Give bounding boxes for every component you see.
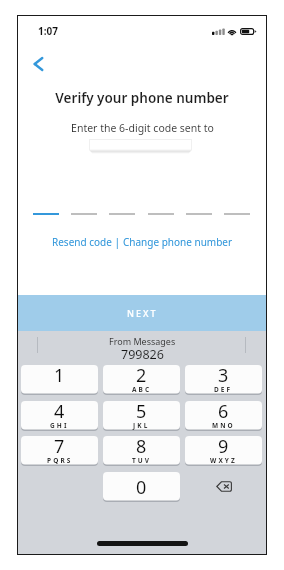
staticText: NEXT bbox=[127, 307, 158, 319]
staticText: PQRS bbox=[47, 456, 73, 465]
staticText: DEF bbox=[214, 385, 233, 394]
staticText: ABC bbox=[132, 385, 152, 394]
button[interactable]: 7 bbox=[21, 436, 98, 466]
staticText: Verify your phone number bbox=[55, 89, 229, 107]
button[interactable]: 1 bbox=[21, 365, 98, 395]
button[interactable]: 9 bbox=[185, 436, 262, 466]
staticText: 9 bbox=[218, 434, 229, 459]
button[interactable]: Change phone number bbox=[123, 235, 233, 249]
staticText: TUV bbox=[132, 456, 152, 465]
staticText: 1 bbox=[54, 363, 65, 388]
button[interactable]: Resend code bbox=[52, 235, 112, 249]
staticText: 8 bbox=[136, 434, 147, 459]
button[interactable]: 2 bbox=[103, 365, 180, 395]
staticText: 3 bbox=[218, 363, 229, 388]
button[interactable]: 6 bbox=[185, 401, 262, 431]
button[interactable]: NEXT bbox=[17, 295, 267, 331]
staticText: 6 bbox=[218, 399, 229, 424]
staticText: 1:07 bbox=[38, 24, 58, 38]
button[interactable]: 3 bbox=[185, 365, 262, 395]
staticText: | bbox=[112, 235, 123, 249]
button[interactable]: Backspace bbox=[185, 472, 262, 501]
staticText: 0 bbox=[136, 475, 147, 500]
button[interactable]: 8 bbox=[103, 436, 180, 466]
staticText: 2 bbox=[136, 363, 147, 388]
button[interactable]: Back bbox=[24, 50, 52, 78]
staticText: GHI bbox=[50, 421, 69, 430]
staticText: 4 bbox=[54, 399, 65, 424]
staticText: JKL bbox=[133, 421, 150, 430]
button[interactable]: 4 bbox=[21, 401, 98, 431]
staticText: 799826 bbox=[121, 346, 164, 363]
button[interactable]: 0 bbox=[103, 472, 180, 502]
staticText: 7 bbox=[54, 434, 65, 459]
staticText: 5 bbox=[136, 399, 147, 424]
staticText: From Messages bbox=[109, 335, 176, 347]
button[interactable]: 5 bbox=[103, 401, 180, 431]
staticText: Enter the 6-digit code sent to bbox=[71, 121, 214, 135]
staticText: WXYZ bbox=[210, 456, 237, 465]
staticText: MNO bbox=[212, 421, 235, 430]
